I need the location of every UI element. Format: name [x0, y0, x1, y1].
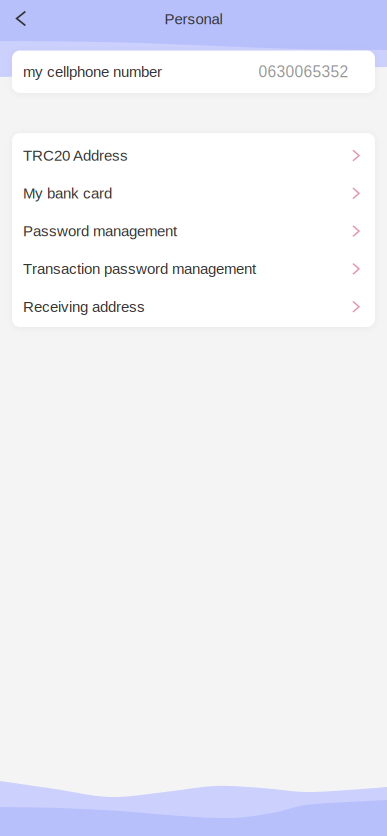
button[interactable]: Back: [2, 0, 40, 37]
staticText: TRC20 Address: [23, 147, 128, 164]
staticText: My bank card: [23, 185, 112, 202]
staticText: Password management: [23, 223, 177, 239]
staticText: Transaction password management: [23, 260, 256, 277]
staticText: Personal: [164, 11, 222, 27]
staticText: my cellphone number: [23, 63, 162, 80]
button[interactable]: My bank card: [12, 174, 375, 212]
button[interactable]: Receiving address: [12, 288, 375, 326]
button[interactable]: Transaction password management: [12, 250, 375, 288]
button[interactable]: Password management: [12, 212, 375, 250]
staticText: 0630065352: [258, 63, 348, 80]
staticText: Receiving address: [23, 298, 145, 315]
button[interactable]: TRC20 Address: [12, 137, 375, 174]
